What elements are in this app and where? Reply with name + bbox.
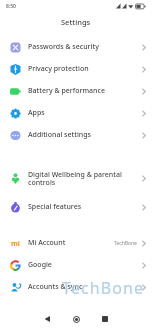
button[interactable]: mi — [0, 232, 152, 254]
button[interactable]: Special features — [0, 196, 152, 218]
staticText: TechBone — [114, 240, 137, 247]
button[interactable]: Additional settings — [0, 124, 152, 146]
staticText: Additional settings — [28, 130, 91, 140]
button[interactable]: Google — [0, 254, 152, 276]
staticText: Digital Wellbeing & parental controls — [28, 170, 122, 187]
staticText: Settings — [61, 17, 91, 27]
button[interactable] — [98, 312, 112, 326]
staticText: Battery & performance — [28, 86, 105, 96]
staticText: Apps — [28, 108, 45, 118]
staticText: Accounts & sync — [28, 282, 83, 292]
button[interactable] — [69, 312, 83, 326]
button[interactable]: Passwords & security — [0, 36, 152, 58]
staticText: Passwords & security — [28, 42, 99, 52]
staticText: Privacy protection — [28, 64, 89, 74]
staticText: Mi Account — [28, 238, 66, 248]
staticText: 8:50 — [6, 3, 16, 10]
staticText: Special features — [28, 202, 82, 212]
button[interactable]: Privacy protection — [0, 58, 152, 80]
button[interactable]: Apps — [0, 102, 152, 124]
button[interactable] — [40, 312, 54, 326]
staticText: mi — [11, 239, 20, 249]
button[interactable]: Accounts & sync — [0, 276, 152, 298]
staticText: TechBone — [62, 277, 145, 299]
button[interactable]: Battery & performance — [0, 80, 152, 102]
button[interactable]: Digital Wellbeing & parental controls — [0, 160, 152, 196]
staticText: Google — [28, 260, 52, 270]
